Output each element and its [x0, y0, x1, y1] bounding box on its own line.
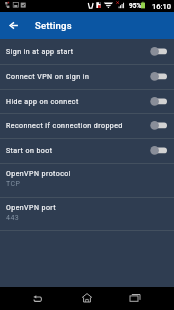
staticText: 16:10 — [152, 2, 172, 11]
button[interactable]: Start on boot — [0, 138, 174, 163]
staticText: Start on boot — [6, 147, 150, 155]
button[interactable]: Home — [63, 287, 111, 310]
staticText: 95% — [129, 2, 142, 10]
staticText: Reconnect if connection dropped — [6, 122, 150, 130]
button[interactable]: Toggle — [150, 97, 168, 107]
staticText: OpenVPN port — [6, 204, 57, 212]
staticText: Hide app on connect — [6, 98, 150, 106]
button[interactable]: Back — [14, 287, 62, 310]
button[interactable]: Connect VPN on sign in — [0, 64, 174, 89]
staticText: OpenVPN protocol — [6, 170, 71, 178]
staticText: Sign in at app start — [6, 48, 150, 56]
button[interactable]: Toggle — [150, 121, 168, 131]
button[interactable]: OpenVPN protocol — [0, 163, 174, 198]
staticText: Settings — [35, 20, 72, 31]
button[interactable]: Hide app on connect — [0, 89, 174, 114]
button[interactable]: OpenVPN port — [0, 197, 174, 230]
staticText: 443 — [6, 214, 20, 222]
staticText: TCP — [6, 180, 21, 188]
button[interactable]: Recent apps — [111, 287, 159, 310]
button[interactable]: Toggle — [150, 47, 168, 57]
staticText: Connect VPN on sign in — [6, 73, 150, 81]
button[interactable]: Toggle — [150, 146, 168, 156]
button[interactable]: Navigate up — [0, 12, 26, 39]
button[interactable]: Toggle — [150, 72, 168, 82]
button[interactable]: Sign in at app start — [0, 39, 174, 64]
button[interactable]: Reconnect if connection dropped — [0, 113, 174, 138]
